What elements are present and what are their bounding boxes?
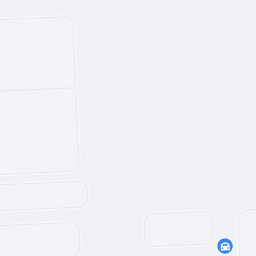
button[interactable]: Vehicle location (211, 241, 229, 256)
